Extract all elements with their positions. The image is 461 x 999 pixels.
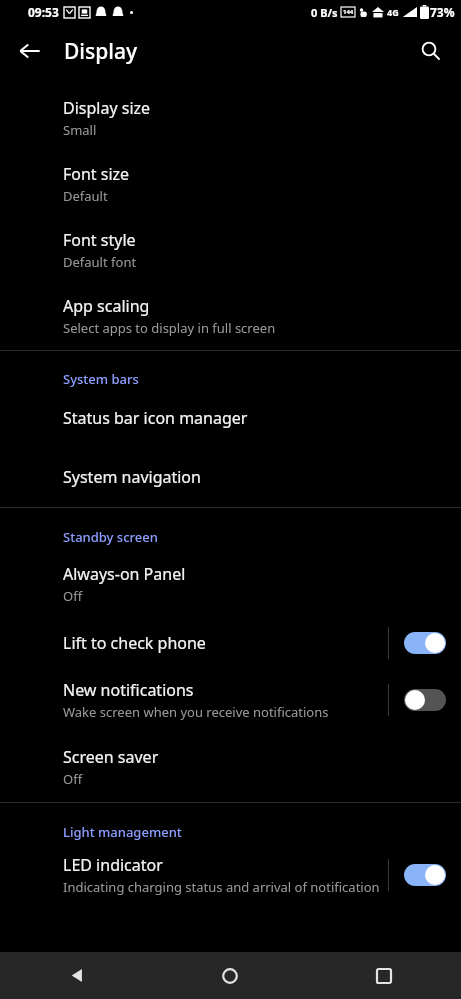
button[interactable]: Lift to check phone on xyxy=(389,619,461,667)
button[interactable]: Screen saver xyxy=(0,732,461,802)
button[interactable]: App scaling xyxy=(0,283,461,350)
button[interactable]: Always-on Panel xyxy=(0,546,461,619)
staticText: Display xyxy=(64,37,138,66)
staticText: Off xyxy=(63,770,83,788)
staticText: 144 xyxy=(343,8,354,16)
staticText: System navigation xyxy=(63,466,201,488)
staticText: Status bar icon manager xyxy=(63,407,248,429)
button[interactable]: Status bar icon manager xyxy=(0,388,461,448)
button[interactable]: Home xyxy=(153,952,307,999)
staticText: 0 B/s xyxy=(311,5,338,20)
staticText: Font size xyxy=(63,163,130,185)
staticText: 09:53 xyxy=(28,4,59,20)
button[interactable]: Display size xyxy=(0,87,461,151)
button[interactable]: Back xyxy=(0,952,153,999)
staticText: LED indicator xyxy=(63,854,163,876)
button[interactable]: Recent apps xyxy=(307,952,461,999)
button[interactable]: Lift to check phone xyxy=(0,619,461,667)
staticText: Light management xyxy=(63,823,182,841)
button[interactable]: New notifications off xyxy=(389,676,461,724)
staticText: Default font xyxy=(63,253,137,271)
staticText: Always-on Panel xyxy=(63,563,186,585)
staticText: Display size xyxy=(63,97,151,119)
staticText: Wake screen when you receive notificatio… xyxy=(63,703,329,721)
button[interactable]: Search xyxy=(409,29,453,73)
staticText: Default xyxy=(63,187,108,205)
staticText: Screen saver xyxy=(63,746,159,768)
staticText: Font style xyxy=(63,229,136,251)
staticText: System bars xyxy=(63,370,139,388)
button[interactable]: LED indicator xyxy=(0,841,461,909)
button[interactable]: Back xyxy=(8,29,52,73)
staticText: Off xyxy=(63,587,83,605)
staticText: 73% xyxy=(430,4,455,20)
button[interactable]: Font size xyxy=(0,151,461,217)
staticText: New notifications xyxy=(63,679,194,701)
staticText: Standby screen xyxy=(63,528,158,546)
button[interactable]: Font style xyxy=(0,217,461,283)
staticText: Select apps to display in full screen xyxy=(63,319,276,337)
staticText: Lift to check phone xyxy=(63,632,206,654)
button[interactable]: LED indicator on xyxy=(389,851,461,899)
staticText: Small xyxy=(63,121,97,139)
button[interactable]: System navigation xyxy=(0,448,461,507)
staticText: Indicating charging status and arrival o… xyxy=(63,878,380,896)
staticText: App scaling xyxy=(63,295,150,317)
button[interactable]: New notifications xyxy=(0,667,461,732)
staticText: 4G xyxy=(387,6,399,18)
